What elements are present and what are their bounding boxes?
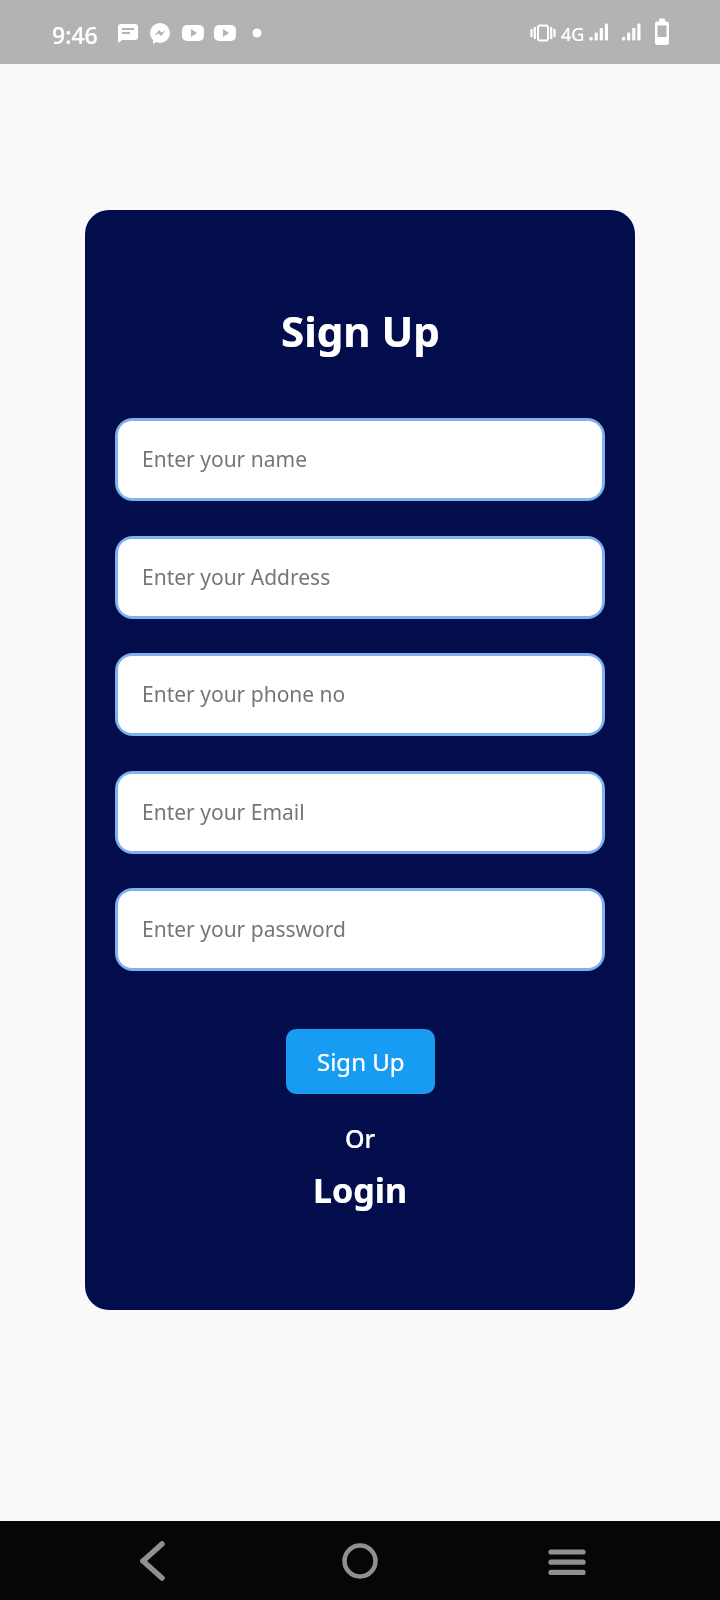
button[interactable]: Enter your name bbox=[118, 421, 602, 498]
staticText: Enter your phone no bbox=[142, 680, 346, 709]
button[interactable]: Enter your Email bbox=[118, 774, 602, 851]
button[interactable]: Enter your Address bbox=[118, 539, 602, 616]
staticText: Or bbox=[345, 1121, 376, 1155]
staticText: Sign Up bbox=[317, 1045, 405, 1078]
staticText: Login bbox=[313, 1167, 408, 1213]
staticText: Enter your Address bbox=[142, 563, 331, 592]
staticText: Enter your Email bbox=[142, 798, 305, 827]
staticText: 9:46 bbox=[52, 19, 98, 50]
button[interactable]: Sign Up bbox=[286, 1029, 435, 1094]
staticText: Sign Up bbox=[281, 302, 440, 359]
staticText: Enter your name bbox=[142, 445, 307, 474]
staticText: 4G bbox=[561, 22, 585, 47]
staticText: Enter your password bbox=[142, 915, 346, 944]
button[interactable]: Login bbox=[313, 1167, 408, 1213]
button[interactable] bbox=[122, 1531, 182, 1591]
button[interactable]: Enter your password bbox=[118, 891, 602, 968]
button[interactable] bbox=[536, 1531, 596, 1591]
button[interactable]: Enter your phone no bbox=[118, 656, 602, 733]
button[interactable] bbox=[330, 1531, 390, 1591]
